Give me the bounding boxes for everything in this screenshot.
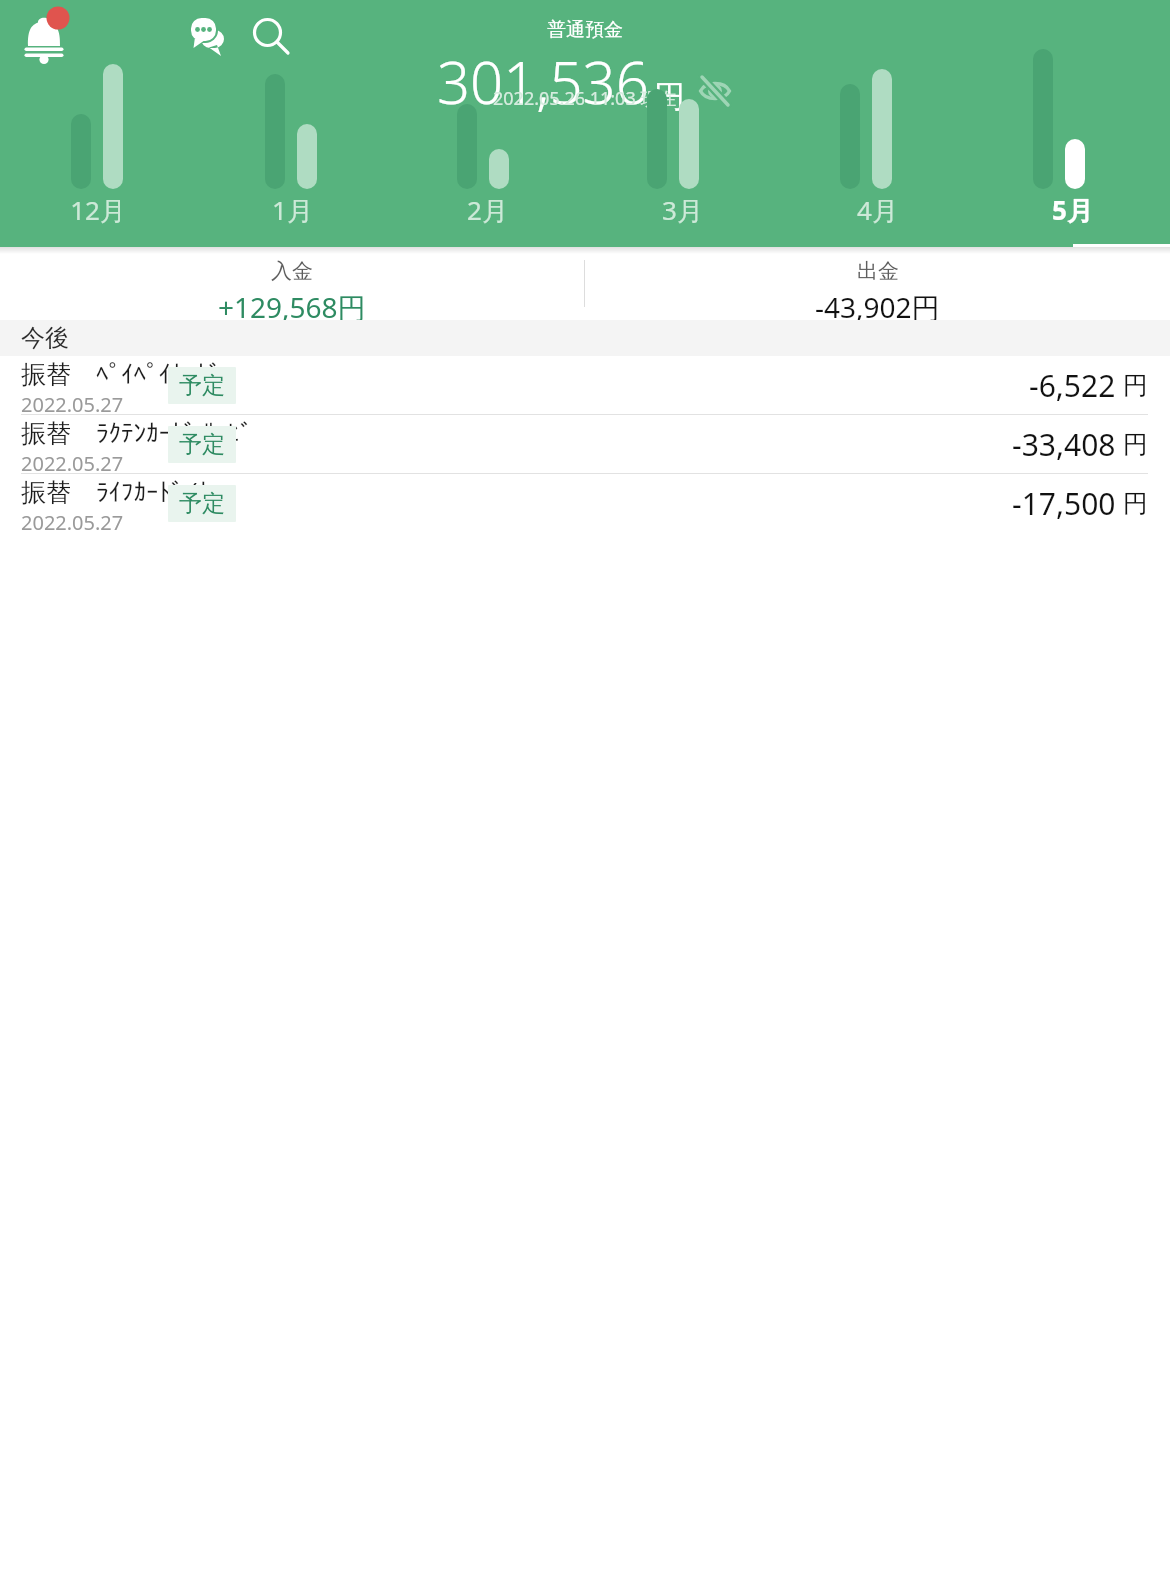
staticText: 円	[1123, 429, 1148, 460]
staticText: 2022.05.27	[21, 450, 124, 473]
button[interactable]: 3月	[585, 190, 780, 247]
staticText: -17,500	[1012, 483, 1116, 524]
staticText: 1月	[272, 192, 313, 228]
button[interactable]: 4月	[780, 190, 975, 247]
button[interactable]: 1月	[195, 190, 390, 247]
button[interactable]: 12月	[0, 190, 195, 247]
button[interactable]: 振替 ﾗｲﾌｶｰﾄﾞ (ｶ	[0, 473, 1170, 532]
staticText: -33,408	[1012, 424, 1116, 465]
staticText: 2022.05.27	[21, 509, 124, 532]
staticText: 301,536	[437, 42, 649, 121]
staticText: 12月	[70, 192, 126, 228]
staticText: 予定	[179, 430, 225, 459]
staticText: 予定	[179, 489, 225, 518]
staticText: 2022.05.27	[21, 391, 124, 414]
staticText: 予定	[179, 371, 225, 400]
staticText: 円	[654, 77, 685, 116]
button[interactable]: Messages	[181, 10, 237, 66]
staticText: 4月	[857, 192, 898, 228]
staticText: 普通預金	[547, 18, 623, 42]
button[interactable]: Search	[244, 10, 300, 66]
staticText: 円	[1123, 370, 1148, 401]
button[interactable]: Notifications	[14, 8, 74, 68]
button[interactable]: 入金	[0, 247, 584, 320]
staticText: 振替 ﾍﾟｲﾍﾟｲｶｰﾄﾞ	[21, 356, 221, 390]
staticText: 円	[1123, 488, 1148, 519]
staticText: 出金	[857, 258, 899, 284]
staticText: 2022.05.26 11:03 現在	[493, 86, 677, 111]
button[interactable]: 出金	[585, 247, 1170, 320]
staticText: 5月	[1052, 192, 1093, 228]
staticText: 振替 ﾗｲﾌｶｰﾄﾞ (ｶ	[21, 474, 211, 508]
staticText: -6,522	[1029, 365, 1116, 406]
staticText: 振替 ﾗｸﾃﾝｶｰﾄﾞ ｻｰﾋﾞ	[21, 415, 253, 449]
button[interactable]: 振替 ﾗｸﾃﾝｶｰﾄﾞ ｻｰﾋﾞ	[0, 414, 1170, 473]
staticText: 2月	[467, 192, 508, 228]
button[interactable]: 5月	[975, 190, 1170, 247]
staticText: 今後	[21, 323, 69, 353]
button[interactable]: 2月	[390, 190, 585, 247]
button[interactable]: Hide balance	[696, 72, 734, 110]
staticText: -43,902円	[815, 288, 940, 320]
staticText: 3月	[662, 192, 703, 228]
staticText: +129,568円	[218, 288, 366, 320]
staticText: 入金	[271, 258, 313, 284]
button[interactable]: 振替 ﾍﾟｲﾍﾟｲｶｰﾄﾞ	[0, 356, 1170, 414]
